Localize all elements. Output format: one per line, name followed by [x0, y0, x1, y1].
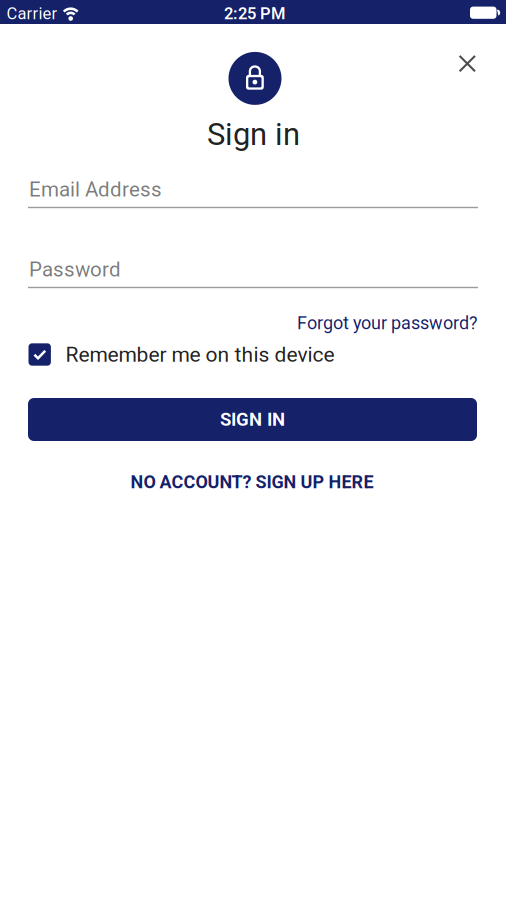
button[interactable]: Remember me on this device: [28, 339, 478, 369]
button[interactable]: Email Address: [28, 173, 478, 213]
staticText: 2:25 PM: [224, 4, 285, 23]
button[interactable]: Forgot your password?: [297, 312, 478, 336]
staticText: Password: [29, 257, 121, 282]
staticText: Email Address: [29, 177, 162, 202]
staticText: SIGN IN: [220, 409, 285, 430]
staticText: Remember me on this device: [65, 342, 334, 367]
button[interactable]: NO ACCOUNT? SIGN UP HERE: [130, 471, 373, 493]
staticText: Carrier: [6, 4, 57, 23]
staticText: Forgot your password?: [297, 312, 478, 334]
button[interactable]: Password: [28, 253, 478, 293]
button[interactable]: Close: [449, 45, 486, 82]
staticText: NO ACCOUNT? SIGN UP HERE: [130, 471, 373, 493]
button[interactable]: SIGN IN: [28, 398, 477, 441]
staticText: Sign in: [207, 116, 300, 153]
